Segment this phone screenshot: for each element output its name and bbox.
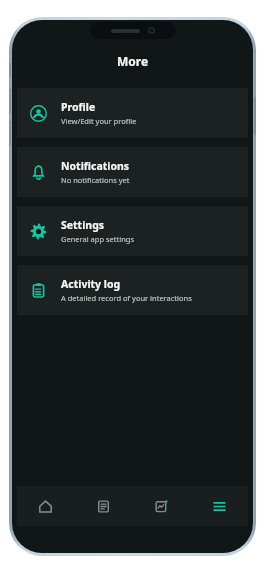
staticText: A detailed record of your interactions (61, 293, 192, 303)
button[interactable]: Activity log (17, 265, 248, 315)
button[interactable]: Notifications (17, 147, 248, 197)
staticText: Activity log (61, 277, 121, 291)
button[interactable]: Insights (132, 486, 190, 526)
button[interactable]: Documents (74, 486, 132, 526)
staticText: General app settings (61, 234, 134, 244)
staticText: More (117, 53, 149, 69)
button[interactable]: Profile (17, 88, 248, 138)
staticText: No notifications yet (61, 175, 130, 185)
staticText: View/Edit your profile (61, 116, 137, 126)
staticText: Profile (61, 100, 96, 114)
button[interactable]: Settings (17, 206, 248, 256)
button[interactable]: Menu (190, 486, 248, 526)
staticText: Settings (61, 218, 105, 232)
button[interactable]: Home (17, 486, 74, 526)
staticText: Notifications (61, 159, 130, 173)
